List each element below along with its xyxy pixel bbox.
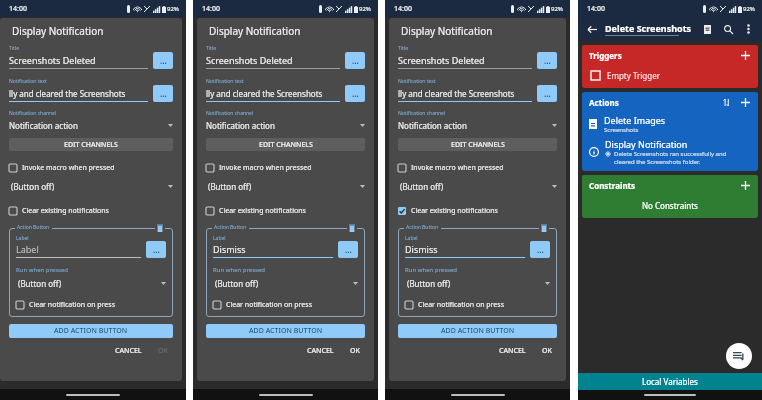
button[interactable]: More options bbox=[537, 52, 557, 69]
button[interactable]: (Button off) bbox=[208, 181, 365, 192]
button[interactable]: Empty Trigger bbox=[582, 65, 758, 86]
staticText: Notification action bbox=[398, 120, 467, 131]
staticText: OK bbox=[542, 346, 552, 356]
button[interactable]: EDIT CHANNELS bbox=[9, 138, 173, 151]
staticText: Notification channel bbox=[398, 110, 446, 117]
button[interactable]: More options bbox=[338, 241, 358, 258]
staticText: Screenshots Deleted bbox=[9, 54, 96, 66]
button[interactable]: ADD ACTION BUTTON bbox=[9, 324, 173, 338]
button[interactable]: Reorder actions bbox=[721, 97, 732, 108]
button[interactable]: Add macro note bbox=[726, 343, 752, 369]
staticText: Screenshots Deleted bbox=[398, 54, 485, 66]
button[interactable]: Invoke macro when pressed bbox=[9, 160, 173, 176]
button[interactable]: Add Actions bbox=[739, 96, 751, 108]
staticText: lly and cleared the Screenshots folder. bbox=[398, 88, 532, 99]
button[interactable]: ADD ACTION BUTTON bbox=[398, 324, 557, 338]
staticText: ADD ACTION BUTTON bbox=[441, 326, 515, 336]
button[interactable]: OK bbox=[537, 344, 557, 358]
button[interactable]: Delete Images bbox=[582, 112, 758, 136]
staticText: 14:00 bbox=[394, 4, 412, 14]
button[interactable]: OK bbox=[345, 344, 365, 358]
staticText: Action Button bbox=[17, 224, 50, 231]
staticText: Title bbox=[398, 45, 408, 52]
staticText: Notification action bbox=[9, 120, 78, 131]
button[interactable]: Notification action bbox=[206, 120, 365, 131]
staticText: Screenshots Deleted bbox=[206, 54, 293, 66]
button[interactable]: Clear notification on press bbox=[16, 297, 166, 313]
staticText: … bbox=[345, 244, 352, 255]
staticText: Clear notification on press bbox=[29, 300, 116, 310]
staticText: EDIT CHANNELS bbox=[451, 140, 505, 150]
button[interactable]: (Button off) bbox=[215, 278, 358, 289]
button[interactable]: Clear notification on press bbox=[405, 297, 550, 313]
staticText: Action Button bbox=[406, 224, 439, 231]
staticText: lly and cleared the Screenshots folder. bbox=[206, 88, 340, 99]
button[interactable]: CANCEL bbox=[302, 344, 339, 358]
staticText: Local Variables bbox=[642, 376, 698, 387]
button[interactable]: More options bbox=[146, 241, 166, 258]
staticText: Delete Screenshots bbox=[605, 22, 692, 34]
button[interactable]: (Button off) bbox=[407, 278, 550, 289]
staticText: Run when pressed bbox=[16, 266, 69, 274]
button[interactable]: Clear notification on press bbox=[213, 297, 358, 313]
staticText: Notification action bbox=[206, 120, 275, 131]
staticText: Label bbox=[16, 243, 39, 255]
button[interactable]: Back bbox=[585, 22, 599, 36]
button[interactable]: More options bbox=[537, 85, 557, 102]
staticText: 92% bbox=[359, 5, 371, 13]
button[interactable]: EDIT CHANNELS bbox=[398, 138, 557, 151]
button[interactable]: (Button off) bbox=[18, 278, 166, 289]
button[interactable]: (Button off) bbox=[400, 181, 557, 192]
button[interactable]: No Constraints bbox=[582, 195, 758, 216]
button[interactable]: Invoke macro when pressed bbox=[206, 160, 365, 176]
staticText: (Button off) bbox=[11, 181, 55, 192]
button[interactable]: (Button off) bbox=[11, 181, 173, 192]
button[interactable]: ADD ACTION BUTTON bbox=[206, 324, 365, 338]
button[interactable]: Clear existing notifications bbox=[398, 203, 557, 219]
staticText: … bbox=[160, 88, 167, 99]
staticText: Empty Trigger bbox=[607, 70, 660, 81]
staticText: OK bbox=[158, 346, 168, 356]
staticText: … bbox=[153, 244, 160, 255]
button[interactable]: Add Triggers bbox=[739, 49, 751, 61]
button[interactable]: Invoke macro when pressed bbox=[398, 160, 557, 176]
button[interactable]: Clear existing notifications bbox=[9, 203, 173, 219]
staticText: Label bbox=[16, 235, 29, 242]
button[interactable]: Clear existing notifications bbox=[206, 203, 365, 219]
button[interactable]: CANCEL bbox=[494, 344, 531, 358]
button[interactable]: OK bbox=[153, 344, 173, 358]
staticText: Delete Screenshots ran successfully and … bbox=[614, 150, 727, 166]
button[interactable]: Delete action button bbox=[157, 224, 163, 232]
staticText: CANCEL bbox=[115, 346, 142, 356]
button[interactable]: Delete action button bbox=[349, 224, 355, 232]
staticText: Display Notification bbox=[12, 24, 104, 38]
button[interactable]: More options bbox=[153, 85, 173, 102]
staticText: Notification channel bbox=[206, 110, 254, 117]
button[interactable]: Local Variables bbox=[578, 373, 762, 390]
button[interactable]: CANCEL bbox=[110, 344, 147, 358]
button[interactable]: Notification action bbox=[398, 120, 557, 131]
button[interactable]: Notification action bbox=[9, 120, 173, 131]
staticText: (Button off) bbox=[208, 181, 252, 192]
button[interactable]: Search bbox=[721, 22, 735, 36]
button[interactable]: EDIT CHANNELS bbox=[206, 138, 365, 151]
button[interactable]: Notes bbox=[700, 22, 714, 36]
staticText: Dismiss bbox=[213, 243, 246, 255]
staticText: Action Button bbox=[214, 224, 247, 231]
button[interactable]: More options bbox=[530, 241, 550, 258]
staticText: ADD ACTION BUTTON bbox=[54, 326, 128, 336]
staticText: (Button off) bbox=[400, 181, 444, 192]
staticText: 92% bbox=[551, 5, 563, 13]
staticText: Display Notification bbox=[209, 24, 301, 38]
staticText: … bbox=[160, 55, 167, 66]
button[interactable]: More options bbox=[153, 52, 173, 69]
button[interactable]: Add Constraints bbox=[739, 179, 751, 191]
button[interactable]: More options bbox=[741, 22, 755, 36]
staticText: (Button off) bbox=[18, 278, 62, 289]
staticText: Run when pressed bbox=[213, 266, 266, 274]
button[interactable]: Delete action button bbox=[541, 224, 547, 232]
button[interactable]: More options bbox=[345, 52, 365, 69]
staticText: Actions bbox=[589, 97, 721, 108]
button[interactable]: Display Notification bbox=[582, 136, 758, 168]
button[interactable]: More options bbox=[345, 85, 365, 102]
